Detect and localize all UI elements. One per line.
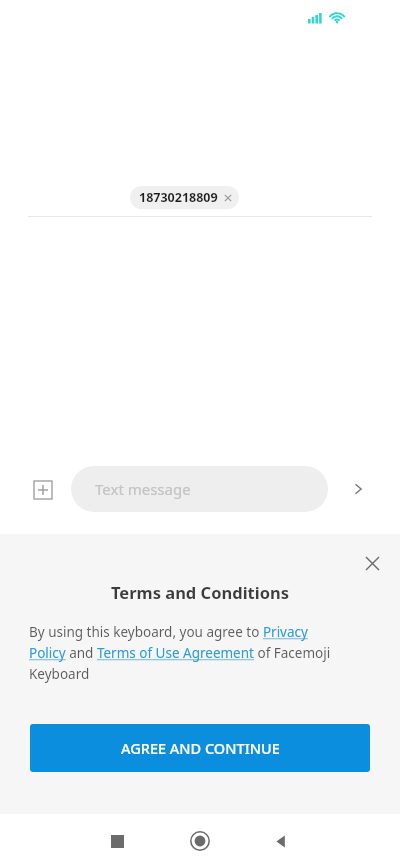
button[interactable]: Recents <box>101 825 133 857</box>
staticText: Terms and Conditions <box>111 581 289 603</box>
button[interactable]: Send <box>344 475 372 503</box>
staticText: By using this keyboard, you agree to Pri… <box>29 623 345 683</box>
button[interactable]: Back <box>265 825 297 857</box>
staticText: AGREE AND CONTINUE <box>121 738 280 758</box>
button[interactable]: 18730218809 <box>130 186 239 209</box>
button[interactable]: Close <box>357 548 387 578</box>
button[interactable]: Text message <box>71 466 328 512</box>
button[interactable]: Home <box>184 825 216 857</box>
staticText: 18730218809 <box>139 189 218 206</box>
button[interactable]: Add attachment <box>30 477 56 503</box>
staticText: Text message <box>95 479 191 499</box>
button[interactable]: AGREE AND CONTINUE <box>30 724 370 772</box>
